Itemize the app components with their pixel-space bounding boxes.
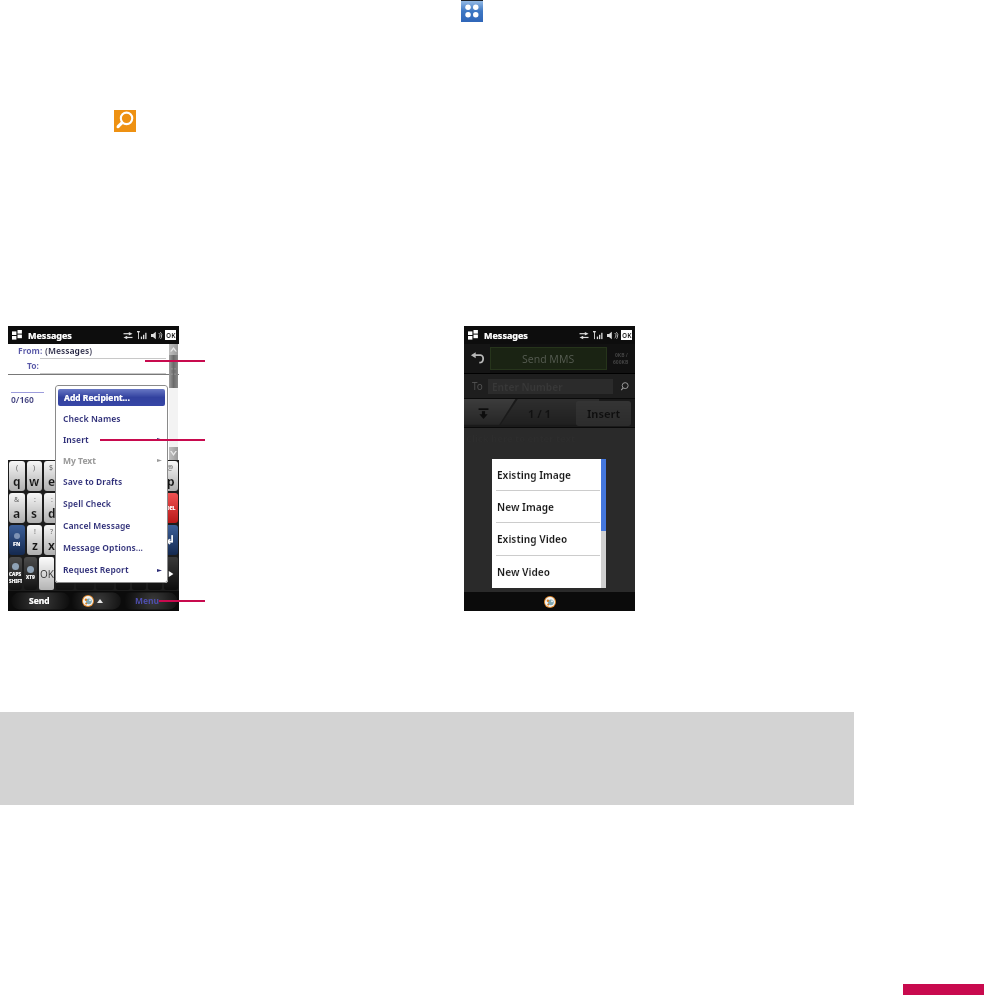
- button[interactable]: ↲: [163, 525, 178, 555]
- button[interactable]: Search: [114, 110, 136, 132]
- button[interactable]: OK: [621, 330, 632, 340]
- button[interactable]: n: [112, 525, 127, 555]
- button[interactable]: !: [27, 525, 42, 555]
- staticText: w: [29, 473, 40, 489]
- staticText: OK: [622, 331, 632, 340]
- button[interactable]: Next: [164, 557, 178, 590]
- button[interactable]: m: [129, 525, 144, 555]
- button[interactable]: Back: [464, 344, 490, 373]
- staticText: Message Options...: [63, 542, 143, 554]
- button[interactable]: [76, 557, 94, 590]
- button[interactable]: OK: [39, 557, 54, 590]
- button[interactable]: Send MMS: [490, 347, 607, 370]
- staticText: a: [13, 505, 21, 521]
- staticText: Messages: [484, 329, 528, 341]
- button[interactable]: ): [27, 461, 42, 491]
- button[interactable]: [56, 557, 74, 590]
- button[interactable]: Search contacts: [613, 374, 635, 398]
- button[interactable]: My Text: [57, 450, 166, 471]
- button[interactable]: Request Report: [57, 559, 166, 581]
- button[interactable]: v: [78, 525, 93, 555]
- button[interactable]: Apps: [461, 0, 483, 22]
- button[interactable]: OK: [165, 330, 176, 340]
- staticText: Add Recipient...: [64, 392, 130, 404]
- staticText: p: [167, 473, 175, 489]
- staticText: CAPS: [9, 571, 22, 578]
- staticText: Existing Image: [497, 468, 572, 482]
- button[interactable]: CAPS: [9, 557, 22, 590]
- button[interactable]: Cancel Message: [57, 515, 166, 537]
- button[interactable]: New Image: [492, 491, 606, 522]
- button[interactable]: Save to Drafts: [57, 471, 166, 493]
- button[interactable]: Message Options...: [57, 537, 166, 559]
- button[interactable]: Check Names: [57, 408, 166, 429]
- staticText: b: [99, 532, 107, 548]
- button[interactable]: &: [9, 493, 25, 523]
- button[interactable]: @: [163, 461, 178, 491]
- button[interactable]: [132, 557, 146, 590]
- staticText: $: [49, 463, 54, 473]
- staticText: e: [48, 473, 56, 489]
- button[interactable]: [116, 557, 130, 590]
- button[interactable]: f: [61, 493, 76, 523]
- staticText: FN: [13, 540, 21, 547]
- button[interactable]: [148, 557, 162, 590]
- staticText: Messages: [28, 329, 72, 341]
- button[interactable]: Insert: [576, 401, 631, 426]
- staticText: 1 / 1: [528, 406, 551, 421]
- staticText: (Messages): [45, 345, 93, 357]
- button[interactable]: DEL: [163, 493, 178, 523]
- button[interactable]: b: [95, 525, 110, 555]
- button[interactable]: Insert media: [464, 399, 502, 427]
- button[interactable]: :: [44, 493, 59, 523]
- button[interactable]: FN: [9, 525, 25, 555]
- button[interactable]: o: [146, 461, 161, 491]
- button[interactable]: u: [112, 461, 127, 491]
- staticText: t: [83, 468, 89, 484]
- staticText: y: [99, 468, 106, 484]
- button[interactable]: $: [44, 461, 59, 491]
- button[interactable]: Insert: [57, 429, 166, 450]
- staticText: s: [31, 505, 38, 521]
- button[interactable]: XT9: [24, 557, 37, 590]
- button[interactable]: r: [61, 461, 76, 491]
- button[interactable]: h: [95, 493, 110, 523]
- button[interactable]: Existing Video: [492, 523, 606, 555]
- button[interactable]: Add Recipient...: [58, 389, 165, 406]
- staticText: x: [48, 537, 55, 553]
- button[interactable]: Spell Check: [57, 493, 166, 515]
- button[interactable]: t: [78, 461, 93, 491]
- button[interactable]: ?: [44, 525, 59, 555]
- staticText: c: [65, 532, 72, 548]
- button[interactable]: g: [78, 493, 93, 523]
- button[interactable]: Send: [8, 591, 70, 611]
- button[interactable]: Existing Image: [492, 459, 606, 490]
- staticText: Cancel Message: [63, 520, 131, 532]
- staticText: ↲: [165, 533, 176, 547]
- button[interactable]: New Video: [492, 556, 606, 588]
- button[interactable]: y: [95, 461, 110, 491]
- staticText: To:: [27, 360, 40, 372]
- button[interactable]: Menu: [115, 591, 179, 611]
- staticText: Request Report: [63, 564, 129, 576]
- staticText: Save to Drafts: [63, 476, 123, 488]
- button[interactable]: (: [9, 461, 25, 491]
- button[interactable]: c: [61, 525, 76, 555]
- staticText: d: [48, 505, 56, 521]
- button[interactable]: :: [27, 493, 42, 523]
- staticText: q: [13, 473, 21, 489]
- button[interactable]: [96, 557, 114, 590]
- staticText: SHIFT: [9, 578, 22, 585]
- staticText: &: [14, 495, 20, 505]
